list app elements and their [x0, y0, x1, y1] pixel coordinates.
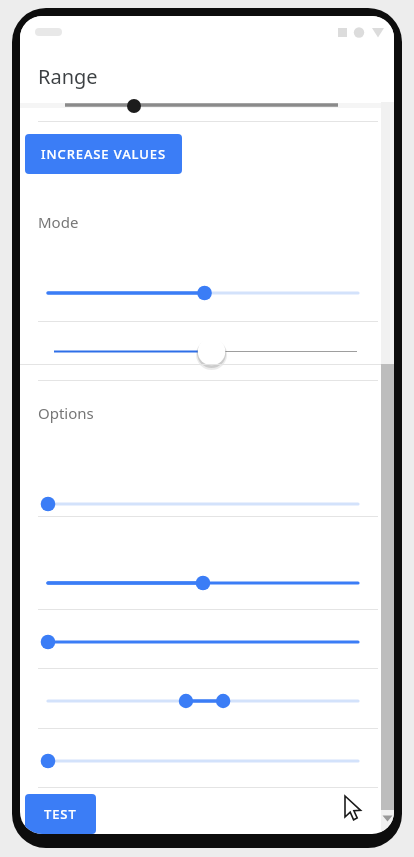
button[interactable]: Slider [20, 627, 394, 657]
button[interactable]: INCREASE VALUES [25, 134, 182, 174]
staticText: Range [38, 63, 98, 90]
staticText: TEST [44, 805, 77, 823]
button[interactable]: Slider [20, 489, 394, 519]
button[interactable]: Range selector [20, 686, 394, 716]
staticText: Options [38, 403, 94, 423]
button[interactable]: TEST [25, 794, 96, 834]
button[interactable]: Slider [20, 278, 394, 308]
staticText: Mode [38, 212, 79, 232]
button[interactable]: Slider [20, 568, 394, 598]
button[interactable]: Adjust value [20, 334, 394, 369]
button[interactable]: Slider [20, 746, 394, 776]
staticText: INCREASE VALUES [41, 145, 166, 163]
